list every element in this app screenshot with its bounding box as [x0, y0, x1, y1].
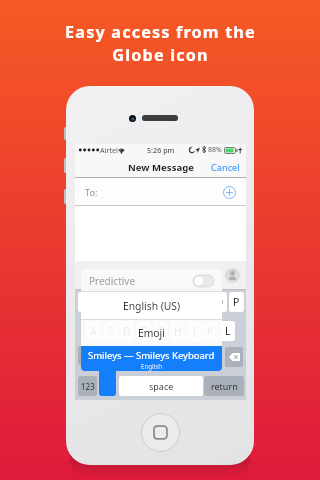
staticText: S	[108, 324, 114, 338]
button[interactable]: A	[86, 321, 101, 341]
staticText: return	[211, 380, 238, 392]
button[interactable]: F	[136, 321, 151, 341]
button[interactable]: U	[179, 292, 194, 312]
staticText: 123	[81, 381, 95, 392]
staticText: L	[225, 324, 231, 338]
staticText: V	[157, 350, 164, 364]
button[interactable]: P	[229, 292, 244, 312]
button[interactable]: Cancel	[205, 158, 246, 177]
button[interactable]: T	[145, 292, 160, 312]
button[interactable]: L	[220, 321, 235, 341]
staticText: To:	[85, 186, 98, 199]
button[interactable]: space	[119, 376, 203, 396]
staticText: English (US)	[123, 299, 181, 313]
button[interactable]: J	[187, 321, 202, 341]
button[interactable]: E	[111, 292, 126, 312]
staticText: K	[207, 324, 214, 338]
staticText: J	[193, 324, 196, 338]
button[interactable]: G	[153, 321, 168, 341]
button[interactable]: Shift	[78, 346, 99, 365]
button[interactable]: Predictive	[81, 269, 222, 292]
button[interactable]: English (US)	[81, 292, 222, 320]
staticText: F	[141, 324, 147, 338]
button[interactable]: B	[170, 347, 185, 367]
staticText: Airtel	[100, 145, 118, 155]
button[interactable]: Globe	[99, 360, 116, 396]
staticText: Cancel	[211, 161, 240, 174]
button[interactable]: D	[119, 321, 134, 341]
button[interactable]: Q	[78, 292, 93, 312]
staticText: English	[141, 362, 163, 370]
staticText: Smileys — Smileys Keyboard	[88, 349, 215, 362]
button[interactable]: Delete	[225, 347, 243, 367]
button[interactable]: Home	[141, 413, 180, 452]
staticText: D	[123, 324, 131, 338]
button[interactable]: Contact suggestion	[225, 268, 240, 283]
staticText: T	[150, 295, 156, 309]
staticText: Y	[167, 295, 173, 309]
button[interactable]: M	[203, 347, 218, 367]
staticText: Z	[107, 350, 114, 364]
button[interactable]: R	[128, 292, 143, 312]
staticText: Predictive	[89, 274, 136, 288]
staticText: G	[157, 324, 165, 338]
button[interactable]: Z	[103, 347, 118, 367]
staticText: space	[149, 380, 174, 392]
button[interactable]: V	[153, 347, 168, 367]
staticText: X	[123, 350, 130, 364]
staticText: O	[215, 295, 224, 309]
staticText: R	[132, 295, 139, 309]
staticText: New Message	[128, 161, 194, 174]
staticText: Emoji	[138, 326, 165, 340]
button[interactable]: C	[136, 347, 151, 367]
button[interactable]: Emoji	[81, 320, 222, 346]
staticText: Easy access from the Globe icon	[65, 21, 256, 65]
staticText: 5:26 pm	[147, 145, 175, 155]
button[interactable]: H	[170, 321, 185, 341]
staticText: H	[174, 324, 182, 338]
button[interactable]: Add contact	[223, 186, 236, 199]
button[interactable]: Y	[162, 292, 177, 312]
staticText: C	[140, 350, 147, 364]
staticText: N	[191, 350, 199, 364]
button[interactable]: X	[119, 347, 134, 367]
button[interactable]: Smileys — Smileys Keyboard	[81, 346, 222, 371]
staticText: A	[90, 324, 97, 338]
button[interactable]: O	[212, 292, 227, 312]
staticText: 88%	[208, 145, 222, 155]
staticText: B	[174, 350, 181, 364]
button[interactable]: return	[204, 376, 244, 396]
button[interactable]: K	[203, 321, 218, 341]
staticText: M	[206, 350, 216, 364]
button[interactable]: N	[187, 347, 202, 367]
button[interactable]: 123	[78, 376, 97, 396]
staticText: P	[233, 295, 240, 309]
